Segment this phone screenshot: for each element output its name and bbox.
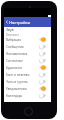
button[interactable]: Back (4, 17, 9, 27)
staticText: Напоминания (6, 52, 39, 56)
button[interactable]: Сообщения (4, 43, 51, 50)
staticText: Включено (6, 33, 19, 37)
staticText: Чаты и группы (6, 80, 39, 84)
staticText: Системные (6, 59, 39, 63)
button[interactable]: Календарь (4, 92, 51, 99)
staticText: Будильник (6, 66, 39, 70)
button[interactable]: Чаты и группы (4, 78, 51, 85)
staticText: Вибрация (6, 38, 39, 42)
staticText: Уведомления (6, 87, 39, 91)
button[interactable]: Напоминания (4, 50, 51, 57)
staticText: Сообщения (6, 45, 39, 49)
staticText: Настройки (9, 20, 31, 25)
staticText: Банк и платежи (6, 73, 39, 77)
button[interactable]: Home (24, 107, 33, 116)
button[interactable]: Системные (4, 57, 51, 64)
button[interactable]: Вибрация (4, 36, 51, 43)
staticText: Календарь (6, 94, 39, 98)
staticText: Звук (6, 27, 14, 32)
button[interactable]: Банк и платежи (4, 71, 51, 78)
button[interactable]: Будильник (4, 64, 51, 71)
button[interactable]: Уведомления (4, 85, 51, 92)
